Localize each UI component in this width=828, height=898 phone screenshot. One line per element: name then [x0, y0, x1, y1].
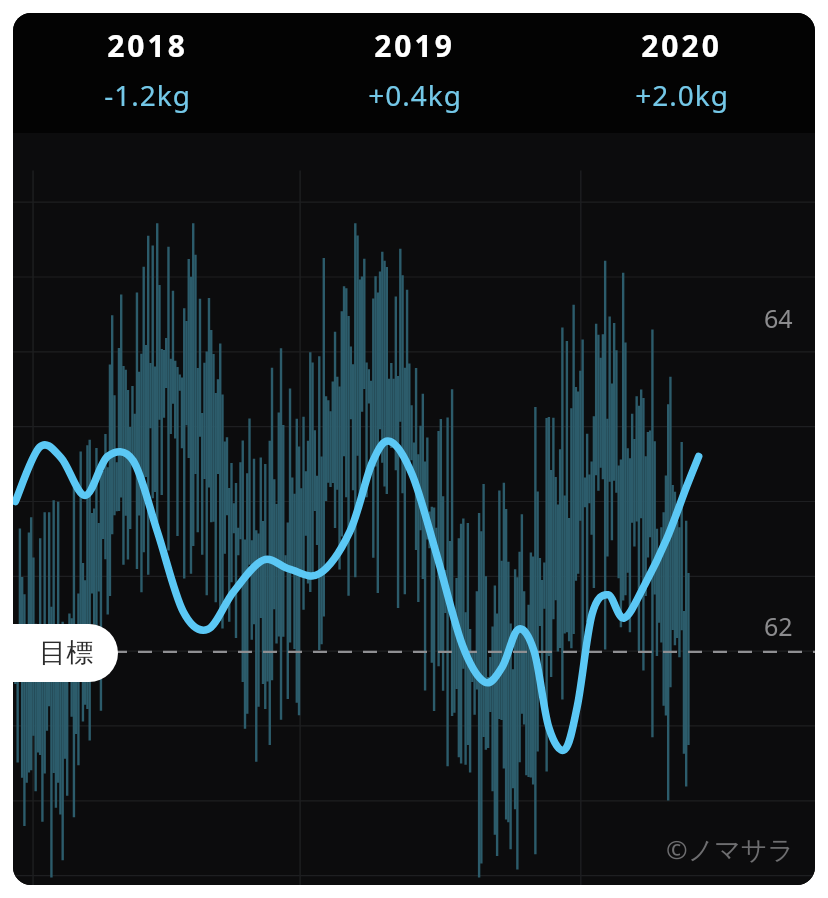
- staticText: 2019: [374, 25, 455, 66]
- staticText: ©ノマサラ: [666, 831, 795, 867]
- staticText: 2020: [641, 25, 722, 66]
- staticText: -1.2kg: [104, 76, 191, 114]
- button[interactable]: 2020: [548, 21, 815, 118]
- staticText: 2018: [107, 25, 188, 66]
- staticText: +2.0kg: [635, 76, 729, 114]
- staticText: +0.4kg: [368, 76, 462, 114]
- staticText: 目標: [39, 636, 93, 670]
- button[interactable]: 2019: [281, 21, 548, 118]
- button[interactable]: Goal weight: [13, 624, 118, 682]
- button[interactable]: 2018: [13, 21, 281, 118]
- staticText: 62: [764, 609, 793, 643]
- staticText: 64: [764, 301, 793, 335]
